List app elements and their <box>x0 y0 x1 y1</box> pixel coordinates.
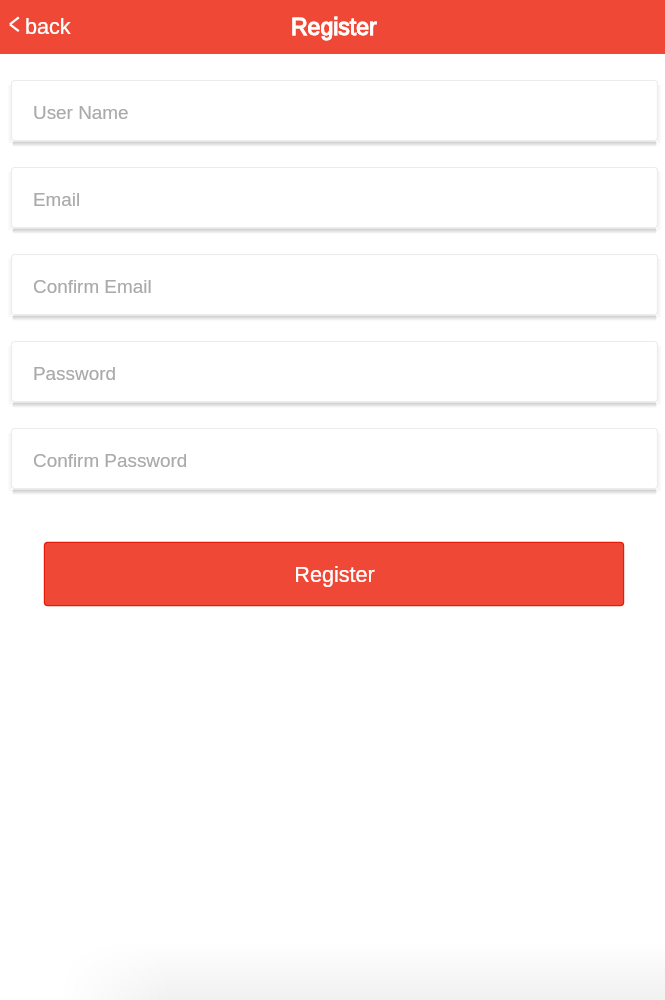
button[interactable]: Confirm Email <box>11 254 658 315</box>
staticText: Confirm Email <box>33 276 152 297</box>
staticText: Confirm Password <box>33 450 188 471</box>
staticText: Register <box>291 14 377 40</box>
staticText: User Name <box>33 102 129 123</box>
staticText: Email <box>33 189 81 210</box>
button[interactable]: Password <box>11 341 658 402</box>
button[interactable]: Email <box>11 167 658 228</box>
staticText: Register <box>294 562 375 586</box>
staticText: Register <box>291 14 377 40</box>
button[interactable]: Register <box>45 543 623 605</box>
button[interactable]: Back <box>0 0 86 54</box>
button[interactable]: User Name <box>11 80 658 141</box>
staticText: back <box>25 14 71 38</box>
staticText: Password <box>33 363 116 384</box>
button[interactable]: Confirm Password <box>11 428 658 489</box>
